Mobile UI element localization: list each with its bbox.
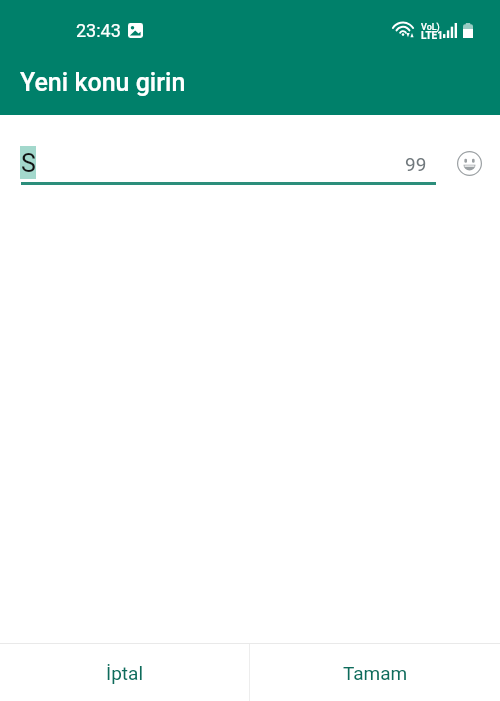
staticText: Tamam	[343, 662, 408, 684]
button[interactable]: İptal	[0, 644, 249, 701]
staticText: VoL)	[421, 22, 440, 33]
button[interactable]: Tamam	[250, 644, 500, 701]
button[interactable]: Konu metin alanı	[20, 137, 436, 185]
staticText: İptal	[106, 662, 144, 684]
staticText: LTE1	[421, 30, 443, 42]
staticText: 23:43	[76, 20, 121, 41]
staticText: S	[21, 149, 36, 178]
button[interactable]: Emoji	[452, 146, 486, 180]
staticText: 99	[405, 153, 427, 175]
staticText: Yeni konu girin	[20, 68, 186, 97]
